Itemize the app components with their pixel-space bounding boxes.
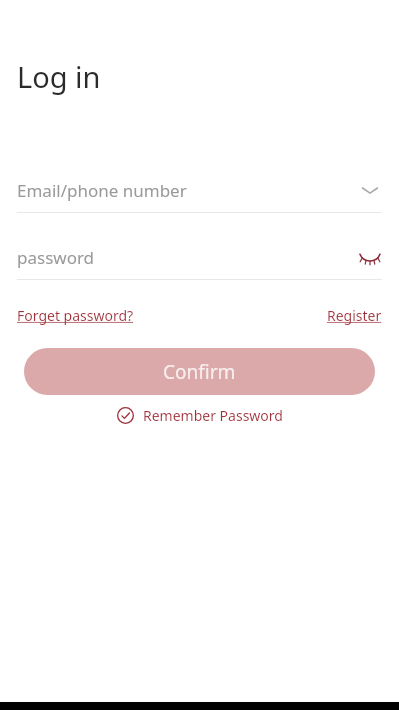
button[interactable]: Show password: [358, 245, 382, 269]
staticText: Forget password?: [17, 306, 134, 325]
button[interactable]: Confirm: [24, 348, 375, 395]
button[interactable]: Remember Password: [111, 402, 289, 429]
staticText: Confirm: [163, 359, 236, 385]
button[interactable]: Show saved accounts: [358, 178, 382, 202]
staticText: Remember Password: [143, 406, 283, 425]
staticText: Log in: [17, 57, 101, 96]
staticText: Email/phone number: [17, 179, 187, 202]
staticText: password: [17, 246, 95, 269]
button[interactable]: Forget password?: [17, 306, 134, 325]
staticText: Register: [327, 306, 382, 325]
button[interactable]: Email/phone number: [0, 168, 399, 212]
button[interactable]: password: [0, 235, 399, 279]
button[interactable]: Register: [327, 306, 382, 325]
